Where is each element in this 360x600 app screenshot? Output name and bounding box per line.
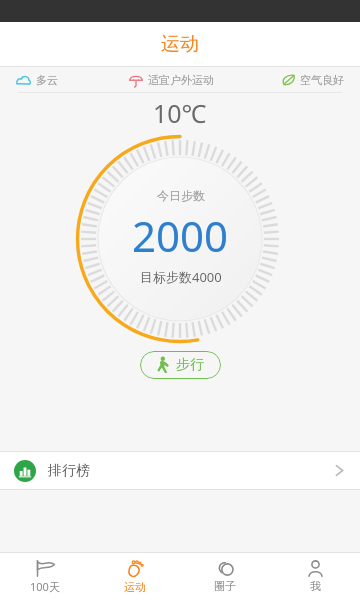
staticText: 运动 xyxy=(124,580,146,594)
other: Open ranking xyxy=(335,463,344,478)
staticText: 今日步数 xyxy=(157,188,205,203)
staticText: 我 xyxy=(310,579,321,593)
button[interactable]: 排行榜 xyxy=(0,452,360,489)
staticText: 排行榜 xyxy=(48,462,90,480)
staticText: 步行 xyxy=(176,356,204,374)
button[interactable]: 100天 xyxy=(0,553,90,600)
staticText: 2000 xyxy=(132,207,229,264)
staticText: 圈子 xyxy=(214,579,236,593)
button[interactable]: 我 xyxy=(270,553,360,600)
staticText: 运动 xyxy=(161,32,199,56)
button[interactable]: 运动 xyxy=(90,553,180,600)
staticText: 适宜户外运动 xyxy=(148,73,214,87)
staticText: 100天 xyxy=(30,579,60,594)
staticText: 空气良好 xyxy=(300,73,344,87)
button[interactable]: 步行 xyxy=(140,351,221,379)
staticText: 10℃ xyxy=(153,96,207,130)
button[interactable]: 圈子 xyxy=(180,553,270,600)
staticText: 多云 xyxy=(36,73,58,87)
staticText: 目标步数4000 xyxy=(140,268,222,286)
